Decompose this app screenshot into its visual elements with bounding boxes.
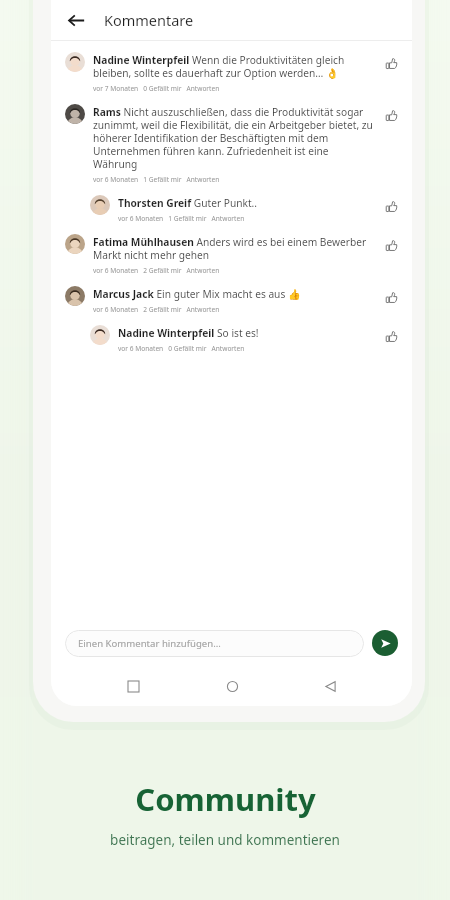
button[interactable]: Gefällt mir: [380, 195, 402, 217]
button[interactable]: Gefällt mir: [380, 52, 402, 74]
staticText: Thorsten Greif Guter Punkt..: [118, 196, 258, 210]
button[interactable]: Gefällt mir: [380, 325, 402, 347]
staticText: vor 6 Monaten 1 Gefällt mir Antworten: [118, 214, 245, 223]
staticText: Kommentare: [104, 10, 194, 30]
staticText: vor 6 Monaten 0 Gefällt mir Antworten: [118, 344, 245, 353]
staticText: Marcus Jack Ein guter Mix macht es aus 👍: [93, 287, 301, 301]
button[interactable]: Zurück: [313, 669, 347, 703]
button[interactable]: Nadine Winterpfeil So ist es!: [51, 316, 412, 355]
button[interactable]: Thorsten Greif Guter Punkt..: [51, 186, 412, 225]
staticText: beitragen, teilen und kommentieren: [110, 831, 340, 849]
staticText: Nadine Winterpfeil Wenn die Produktivitä…: [93, 53, 374, 80]
staticText: vor 7 Monaten 0 Gefällt mir Antworten: [93, 84, 220, 93]
button[interactable]: Nadine Winterpfeil Wenn die Produktivitä…: [51, 41, 412, 95]
staticText: vor 6 Monaten 2 Gefällt mir Antworten: [93, 266, 220, 275]
button[interactable]: Rams Nicht auszuschließen, dass die Prod…: [51, 95, 412, 186]
staticText: Einen Kommentar hinzufügen...: [78, 637, 221, 650]
button[interactable]: Startbildschirm: [215, 669, 249, 703]
staticText: Nadine Winterpfeil So ist es!: [118, 326, 259, 340]
button[interactable]: Senden: [372, 630, 398, 656]
button[interactable]: Einen Kommentar hinzufügen...: [65, 630, 364, 657]
button[interactable]: Zurück: [59, 3, 93, 37]
button[interactable]: Gefällt mir: [380, 286, 402, 308]
button[interactable]: Gefällt mir: [380, 234, 402, 256]
button[interactable]: Letzte Apps: [116, 669, 150, 703]
staticText: vor 6 Monaten 2 Gefällt mir Antworten: [93, 305, 220, 314]
staticText: Community: [135, 778, 316, 820]
button[interactable]: Gefällt mir: [380, 104, 402, 126]
staticText: vor 6 Monaten 1 Gefällt mir Antworten: [93, 175, 220, 184]
button[interactable]: Fatima Mühlhausen Anders wird es bei ein…: [51, 225, 412, 277]
staticText: Fatima Mühlhausen Anders wird es bei ein…: [93, 235, 374, 262]
staticText: Rams Nicht auszuschließen, dass die Prod…: [93, 105, 374, 171]
button[interactable]: Marcus Jack Ein guter Mix macht es aus 👍: [51, 277, 412, 316]
